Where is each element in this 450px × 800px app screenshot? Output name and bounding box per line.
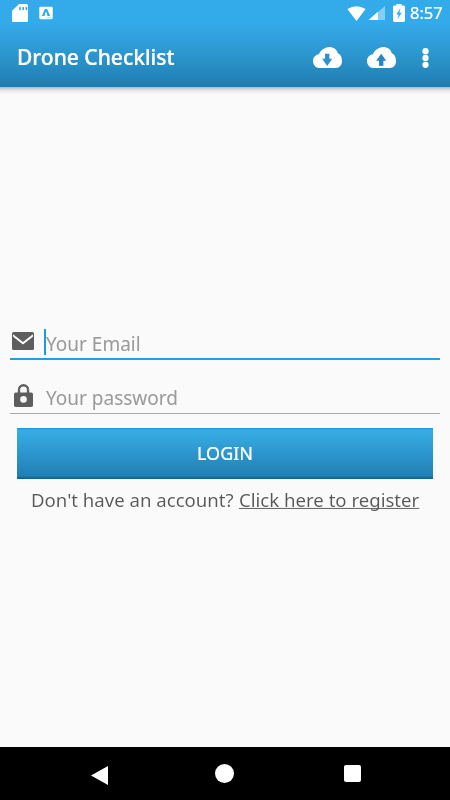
button[interactable]: Recent apps (327, 748, 377, 798)
button[interactable]: Your password (10, 381, 440, 414)
staticText: Drone Checklist (17, 43, 175, 72)
staticText: 8:57 (410, 1, 443, 23)
button[interactable]: Back (74, 750, 124, 800)
staticText: Your password (46, 385, 178, 411)
button[interactable]: Your Email (10, 326, 440, 360)
staticText: Your Email (46, 331, 141, 357)
button[interactable]: Upload (357, 33, 405, 81)
button[interactable]: Home (199, 748, 249, 798)
button[interactable]: LOGIN (17, 428, 433, 479)
button[interactable]: Click here to register (239, 487, 420, 512)
button[interactable]: More options (403, 35, 448, 80)
staticText: LOGIN (197, 441, 254, 466)
staticText: Don't have an account? (31, 487, 239, 512)
button[interactable]: Download (303, 33, 351, 81)
